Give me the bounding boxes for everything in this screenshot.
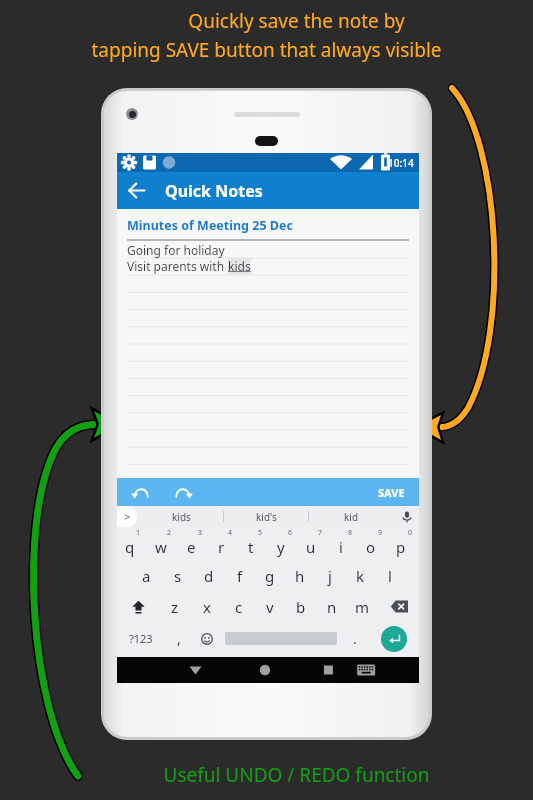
staticText: Quick Notes xyxy=(165,180,263,202)
staticText: Quickly save the note by xyxy=(60,8,533,34)
staticText: 7 xyxy=(318,528,323,538)
button[interactable]: m xyxy=(347,591,378,622)
button[interactable]: ?123 xyxy=(117,622,165,655)
staticText: b xyxy=(296,597,306,617)
staticText: x xyxy=(203,597,211,617)
button[interactable]: t xyxy=(239,529,269,560)
staticText: SAVE xyxy=(378,485,405,500)
staticText: s xyxy=(174,566,182,586)
staticText: q xyxy=(125,537,135,557)
staticText: 5 xyxy=(258,528,263,538)
staticText: n xyxy=(327,597,337,617)
button[interactable]: kids xyxy=(139,506,223,527)
staticText: kid's xyxy=(256,510,277,524)
staticText: kids xyxy=(172,510,191,524)
button[interactable]: w xyxy=(148,529,179,560)
staticText: j xyxy=(328,566,332,586)
button[interactable]: Back xyxy=(117,172,155,209)
staticText: ?123 xyxy=(129,631,153,646)
staticText: u xyxy=(306,537,316,557)
button[interactable]: q xyxy=(117,529,148,560)
button[interactable]: Space xyxy=(221,622,341,655)
staticText: h xyxy=(295,566,305,586)
button[interactable]: Minutes of Meeting 25 Dec xyxy=(117,209,419,478)
staticText: 4 xyxy=(228,528,233,538)
staticText: , xyxy=(177,629,181,648)
staticText: 10:14 xyxy=(388,156,414,170)
button[interactable]: j xyxy=(315,560,345,591)
staticText: Useful UNDO / REDO function xyxy=(60,762,533,788)
button[interactable]: y xyxy=(269,529,299,560)
button[interactable]: i xyxy=(329,529,359,560)
staticText: i xyxy=(339,537,343,557)
button[interactable]: z xyxy=(159,591,191,622)
staticText: p xyxy=(396,537,406,557)
button[interactable]: Undo xyxy=(125,478,157,506)
button[interactable]: . xyxy=(341,622,369,655)
button[interactable]: g xyxy=(255,560,285,591)
staticText: 8 xyxy=(348,528,353,538)
button[interactable]: f xyxy=(224,560,255,591)
staticText: Visit parents with xyxy=(127,258,228,274)
button[interactable]: b xyxy=(285,591,316,622)
button[interactable]: u xyxy=(299,529,329,560)
button[interactable]: r xyxy=(209,529,239,560)
staticText: > xyxy=(124,509,131,524)
staticText: r xyxy=(218,537,225,557)
staticText: 1 xyxy=(136,528,141,538)
button[interactable]: , xyxy=(165,622,193,655)
button[interactable]: l xyxy=(375,560,405,591)
staticText: Minutes of Meeting 25 Dec xyxy=(127,217,293,234)
button[interactable]: kid xyxy=(309,506,393,527)
button[interactable]: e xyxy=(179,529,209,560)
staticText: 0 xyxy=(408,528,413,538)
staticText: tapping SAVE button that always visible xyxy=(0,37,533,63)
staticText: g xyxy=(265,566,275,586)
button[interactable]: s xyxy=(162,560,193,591)
staticText: f xyxy=(237,566,243,586)
button[interactable]: o xyxy=(359,529,389,560)
button[interactable]: Redo xyxy=(167,478,199,506)
button[interactable]: Shift xyxy=(117,591,159,622)
button[interactable]: kid's xyxy=(224,506,308,527)
staticText: k xyxy=(356,566,365,586)
staticText: 2 xyxy=(167,528,172,538)
button[interactable]: x xyxy=(191,591,223,622)
button[interactable]: Emoji xyxy=(193,622,221,655)
staticText: o xyxy=(366,537,376,557)
staticText: kids xyxy=(228,258,251,274)
staticText: t xyxy=(248,537,254,557)
staticText: 6 xyxy=(288,528,293,538)
button[interactable]: p xyxy=(389,529,419,560)
staticText: 3 xyxy=(198,528,203,538)
button[interactable]: c xyxy=(223,591,254,622)
button[interactable]: d xyxy=(193,560,224,591)
staticText: kid xyxy=(344,510,359,524)
button[interactable]: v xyxy=(254,591,285,622)
button[interactable]: More suggestions xyxy=(117,506,137,527)
button[interactable]: Voice input xyxy=(395,506,419,527)
staticText: z xyxy=(171,597,179,617)
staticText: v xyxy=(266,597,274,617)
button[interactable]: h xyxy=(285,560,315,591)
staticText: c xyxy=(235,597,243,617)
staticText: Going for holiday xyxy=(127,242,225,258)
staticText: . xyxy=(353,629,357,648)
button[interactable]: k xyxy=(345,560,375,591)
staticText: d xyxy=(204,566,214,586)
button[interactable]: Enter xyxy=(369,622,419,655)
button[interactable]: Backspace xyxy=(378,591,419,622)
button[interactable]: n xyxy=(316,591,347,622)
staticText: e xyxy=(187,537,196,557)
button[interactable]: a xyxy=(131,560,162,591)
staticText: y xyxy=(277,537,285,557)
staticText: 9 xyxy=(378,528,383,538)
staticText: m xyxy=(355,597,370,617)
staticText: l xyxy=(388,566,392,586)
staticText: w xyxy=(155,537,167,557)
button[interactable]: SAVE xyxy=(364,478,419,506)
staticText: a xyxy=(142,566,151,586)
